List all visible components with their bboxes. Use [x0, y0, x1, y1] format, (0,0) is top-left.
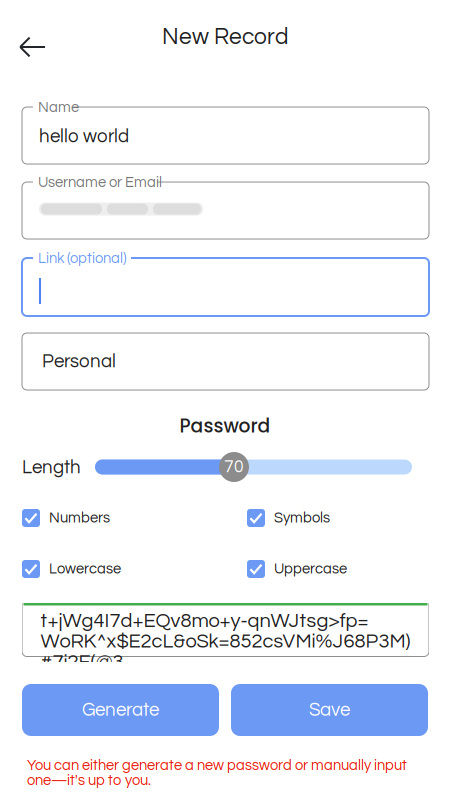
button[interactable]: Generate: [22, 684, 219, 736]
staticText: Symbols: [274, 510, 330, 525]
staticText: Lowercase: [49, 561, 121, 576]
staticText: 70: [224, 458, 244, 476]
staticText: Username or Email: [38, 175, 162, 190]
button[interactable]: Numbers: [22, 508, 212, 528]
staticText: Personal: [42, 352, 116, 371]
staticText: Name: [38, 100, 79, 115]
staticText: hello world: [39, 127, 129, 146]
staticText: Length: [22, 458, 81, 477]
staticText: Password: [179, 413, 270, 439]
button[interactable]: Symbols: [247, 508, 437, 528]
staticText: Save: [309, 700, 350, 720]
staticText: t+jWg4I7d+EQv8mo+y-qnWJtsg>fp= WoRK^x$E2…: [40, 611, 410, 672]
button[interactable]: Back: [10, 28, 55, 66]
staticText: You can either generate a new password o…: [27, 758, 407, 788]
staticText: New Record: [162, 25, 288, 49]
staticText: Link (optional): [38, 251, 127, 266]
button[interactable]: Lowercase: [22, 559, 212, 579]
button[interactable]: Uppercase: [247, 559, 437, 579]
button[interactable]: Save: [231, 684, 428, 736]
staticText: Numbers: [49, 510, 110, 525]
staticText: Uppercase: [274, 561, 347, 576]
staticText: Generate: [82, 700, 159, 720]
